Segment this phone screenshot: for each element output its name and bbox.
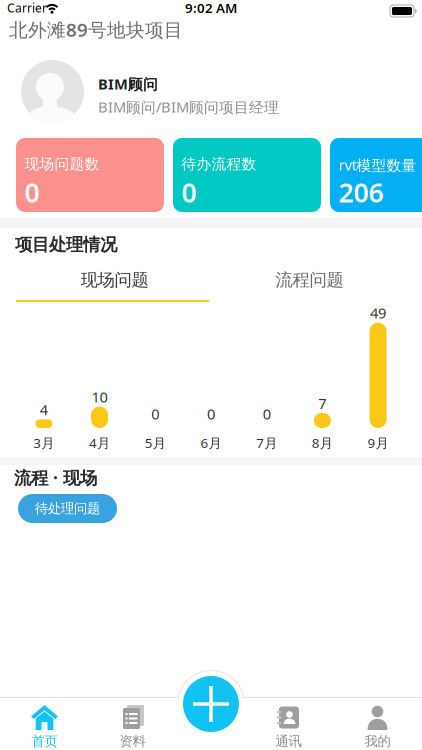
staticText: BIM顾问 [98,74,158,94]
button[interactable]: BIM顾问 [0,61,422,131]
staticText: 9:02 AM [185,0,237,17]
staticText: 首页 [31,733,57,749]
staticText: 流程 · 现场 [14,466,97,489]
staticText: 5月 [145,434,166,452]
button[interactable]: 首页 [2,703,87,750]
staticText: 49 [370,303,386,323]
staticText: 我的 [364,733,390,749]
button[interactable]: rvt模型数量 [330,138,422,212]
staticText: 0 [24,174,39,210]
button[interactable]: 我的 [335,703,420,750]
staticText: BIM顾问/BIM顾问项目经理 [98,97,279,117]
button[interactable]: 新增 [183,676,239,732]
staticText: 206 [338,174,383,210]
staticText: 0 [263,404,271,423]
staticText: 流程问题 [275,269,343,291]
staticText: 资料 [119,733,145,749]
staticText: 7 [318,393,326,413]
button[interactable]: 资料 [90,703,175,750]
staticText: 待办流程数 [181,155,256,173]
button[interactable]: 待办流程数 [173,138,321,212]
staticText: 北外滩89号地块项目 [9,17,183,42]
staticText: 0 [181,174,196,210]
staticText: 0 [207,404,215,423]
staticText: Carrier [7,0,47,16]
staticText: 通讯 [275,733,301,749]
staticText: 项目处理情况 [15,234,117,255]
staticText: 4 [40,400,48,419]
button[interactable]: 现场问题数 [16,138,164,212]
button[interactable]: 流程问题 [204,267,415,293]
button[interactable]: 现场问题 [9,267,220,293]
staticText: 7月 [256,434,277,452]
staticText: 待处理问题 [35,500,100,517]
staticText: 3月 [33,434,54,452]
staticText: 9月 [368,434,389,452]
staticText: 现场问题 [80,269,148,291]
staticText: 0 [151,404,159,423]
staticText: 8月 [312,434,333,452]
staticText: rvt模型数量 [338,155,416,175]
staticText: 10 [92,387,108,406]
staticText: 6月 [200,434,221,452]
button[interactable]: 待处理问题 [18,494,117,523]
staticText: 现场问题数 [24,155,99,173]
button[interactable]: 通讯 [246,703,331,750]
staticText: 4月 [89,434,110,452]
